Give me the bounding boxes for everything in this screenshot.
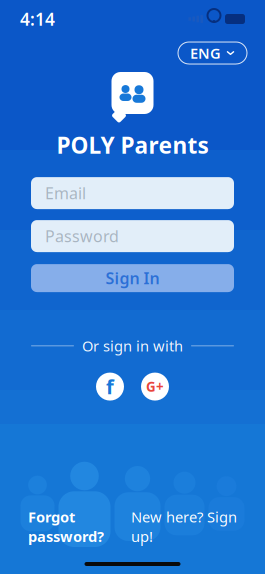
staticText: Password bbox=[45, 225, 119, 247]
button[interactable]: New here? Sign up! bbox=[131, 507, 237, 546]
staticText: ENG bbox=[190, 43, 221, 63]
button[interactable]: ENG bbox=[178, 42, 247, 64]
staticText: 4:14 bbox=[20, 7, 55, 30]
button[interactable]: Sign in with Google bbox=[141, 373, 169, 401]
staticText: New here? Sign up! bbox=[131, 507, 237, 546]
staticText: Sign In bbox=[105, 267, 159, 289]
staticText: Forgot password? bbox=[28, 507, 104, 546]
staticText: G+ bbox=[146, 378, 164, 395]
staticText: POLY Parents bbox=[56, 130, 208, 160]
staticText: f bbox=[106, 373, 114, 400]
button[interactable]: Sign in with Facebook bbox=[96, 373, 124, 401]
staticText: Or sign in with bbox=[82, 336, 183, 356]
button[interactable]: Sign In bbox=[31, 264, 234, 292]
button[interactable]: Forgot password? bbox=[28, 507, 104, 546]
staticText: Email bbox=[45, 182, 86, 204]
